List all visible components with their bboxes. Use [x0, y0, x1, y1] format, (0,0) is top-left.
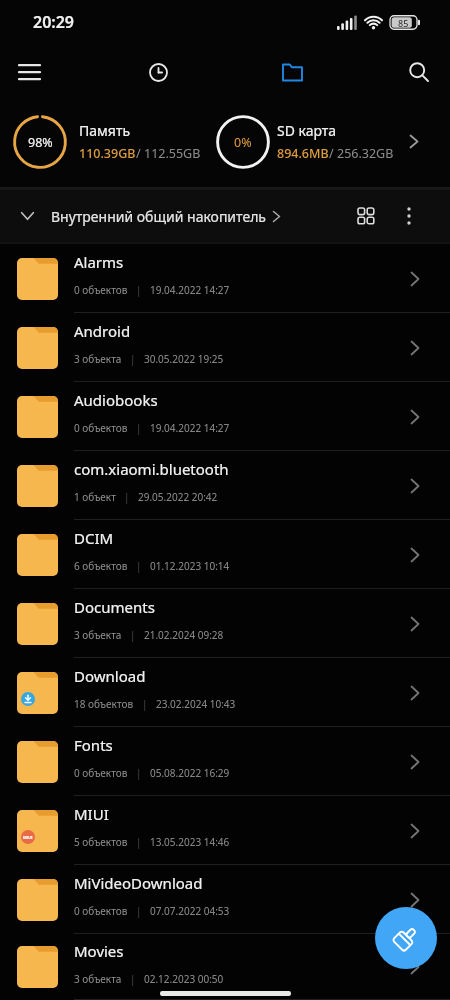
- staticText: 0%: [234, 134, 252, 151]
- button[interactable]: [402, 55, 436, 89]
- staticText: 21.02.2024 09:28: [144, 628, 224, 642]
- staticText: Внутренний общий накопитель: [51, 207, 266, 226]
- button[interactable]: com.xiaomi.bluetooth: [0, 451, 450, 520]
- staticText: 3 объекта: [74, 628, 122, 642]
- staticText: 3 объекта: [74, 972, 122, 986]
- staticText: Download: [74, 666, 146, 686]
- staticText: 98%: [28, 134, 53, 151]
- button[interactable]: 98%: [0, 100, 450, 187]
- staticText: /: [136, 145, 144, 162]
- staticText: 0 объектов: [74, 766, 128, 780]
- staticText: |: [136, 559, 142, 573]
- button[interactable]: [12, 55, 46, 89]
- staticText: 18 объектов: [74, 697, 134, 711]
- button[interactable]: Alarms: [0, 244, 450, 313]
- staticText: 256.32GB: [337, 145, 394, 162]
- staticText: 112.55GB: [144, 145, 201, 162]
- button[interactable]: MiVideoDownload: [0, 865, 450, 934]
- button[interactable]: Download: [0, 658, 450, 727]
- staticText: 02.12.2023 00:50: [144, 972, 224, 986]
- staticText: |: [136, 835, 142, 849]
- staticText: MIUI: [23, 835, 33, 840]
- button[interactable]: Audiobooks: [0, 382, 450, 451]
- staticText: 05.08.2022 16:29: [150, 766, 230, 780]
- staticText: Android: [74, 321, 131, 341]
- button[interactable]: Fonts: [0, 727, 450, 796]
- staticText: |: [124, 490, 130, 504]
- staticText: Movies: [74, 941, 124, 961]
- button[interactable]: [349, 199, 383, 233]
- staticText: Alarms: [74, 252, 124, 272]
- staticText: 894.6MB: [277, 145, 329, 162]
- staticText: 5 объектов: [74, 835, 128, 849]
- staticText: 1 объект: [74, 490, 116, 504]
- staticText: |: [136, 766, 142, 780]
- staticText: |: [130, 628, 136, 642]
- button[interactable]: Movies: [0, 934, 450, 1000]
- button[interactable]: [394, 201, 424, 231]
- staticText: 19.04.2022 14:27: [150, 421, 230, 435]
- staticText: Память: [79, 121, 131, 140]
- staticText: SD карта: [277, 121, 337, 140]
- staticText: 23.02.2024 10:43: [156, 697, 236, 711]
- button[interactable]: Documents: [0, 589, 450, 658]
- button[interactable]: [140, 54, 176, 90]
- staticText: |: [142, 697, 148, 711]
- staticText: 20:29: [33, 11, 75, 33]
- staticText: |: [130, 972, 136, 986]
- staticText: 01.12.2023 10:14: [150, 559, 230, 573]
- staticText: |: [130, 352, 136, 366]
- button[interactable]: Android: [0, 313, 450, 382]
- staticText: Fonts: [74, 735, 113, 755]
- button[interactable]: DCIM: [0, 520, 450, 589]
- staticText: 19.04.2022 14:27: [150, 283, 230, 297]
- staticText: 6 объектов: [74, 559, 128, 573]
- staticText: com.xiaomi.bluetooth: [74, 459, 229, 479]
- staticText: MIUI: [74, 804, 109, 824]
- staticText: 0 объектов: [74, 421, 128, 435]
- staticText: /: [329, 145, 337, 162]
- button[interactable]: Внутренний общий накопитель: [0, 190, 450, 242]
- staticText: MiVideoDownload: [74, 873, 203, 893]
- staticText: 29.05.2022 20:42: [138, 490, 218, 504]
- staticText: Audiobooks: [74, 390, 158, 410]
- staticText: 3 объекта: [74, 352, 122, 366]
- staticText: 13.05.2023 14:46: [150, 835, 230, 849]
- staticText: 85: [398, 17, 409, 29]
- staticText: |: [136, 283, 142, 297]
- staticText: 0 объектов: [74, 283, 128, 297]
- staticText: Documents: [74, 597, 155, 617]
- staticText: 07.07.2022 04:53: [150, 904, 230, 918]
- staticText: DCIM: [74, 528, 114, 548]
- staticText: |: [136, 904, 142, 918]
- button[interactable]: [274, 54, 310, 90]
- button[interactable]: MIUI: [0, 796, 450, 865]
- staticText: |: [136, 421, 142, 435]
- staticText: 110.39GB: [79, 145, 136, 162]
- staticText: 0 объектов: [74, 904, 128, 918]
- button[interactable]: [375, 907, 437, 969]
- staticText: 30.05.2022 19:25: [144, 352, 224, 366]
